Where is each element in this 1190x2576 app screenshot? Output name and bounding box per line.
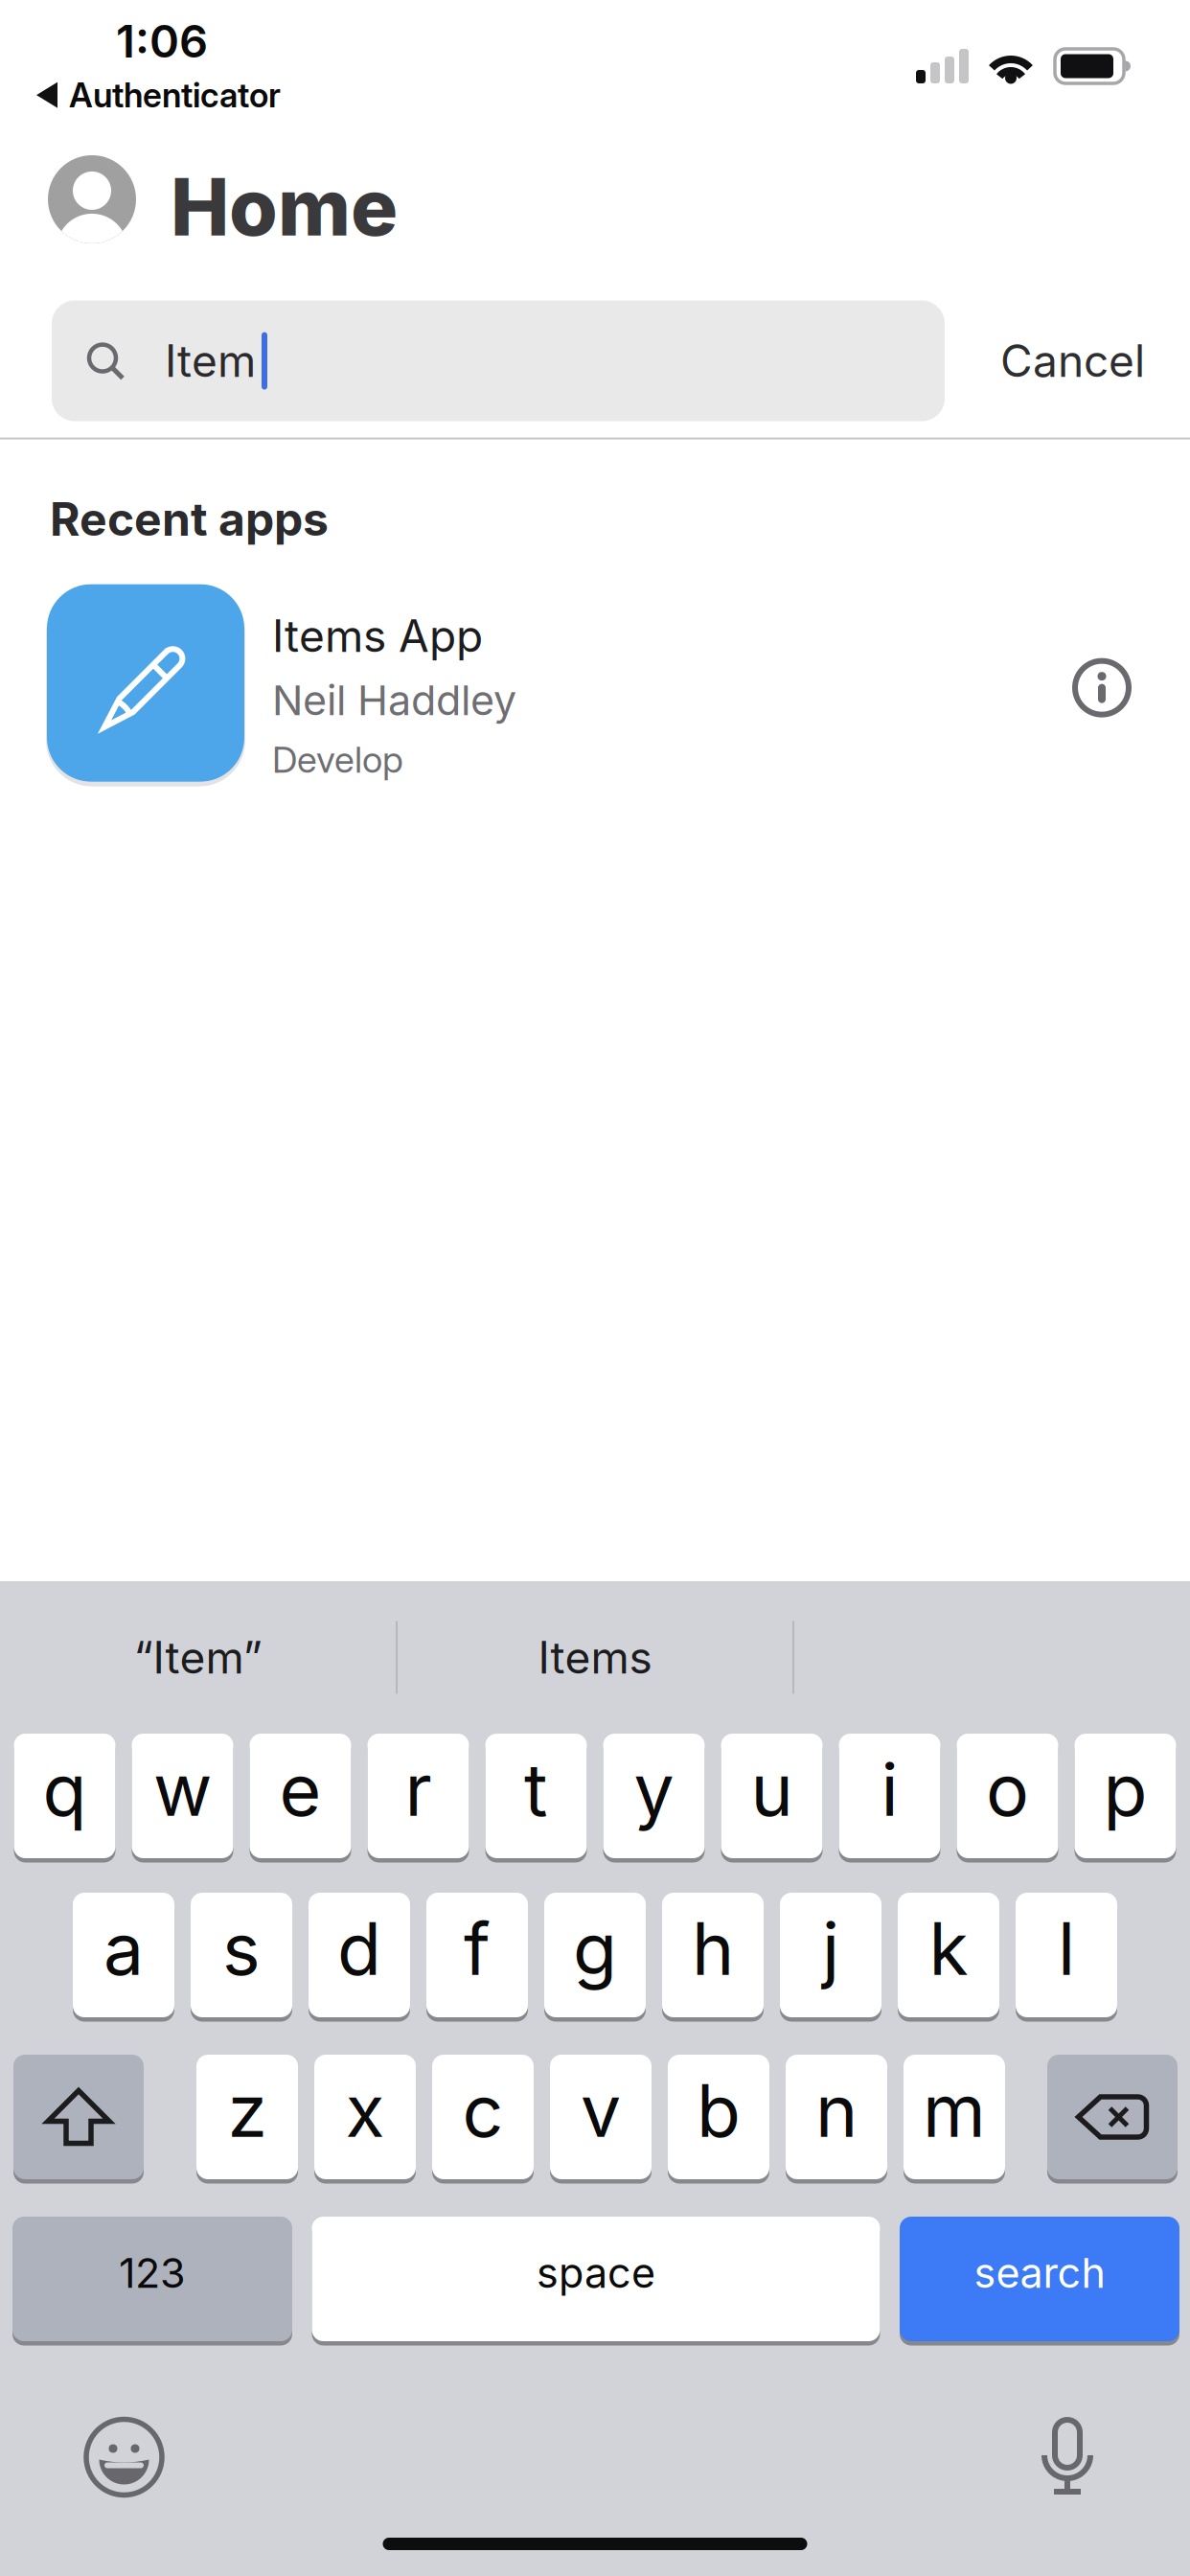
button[interactable]: u <box>721 1734 823 1861</box>
button[interactable]: m <box>904 2055 1005 2182</box>
button[interactable]: b <box>668 2055 769 2182</box>
button[interactable]: e <box>250 1734 351 1861</box>
staticText: g <box>573 1905 617 1992</box>
staticText: p <box>1103 1746 1147 1833</box>
button[interactable]: j <box>780 1893 881 2020</box>
staticText: b <box>697 2067 741 2154</box>
button[interactable]: p <box>1075 1734 1176 1861</box>
button[interactable]: f <box>426 1893 528 2020</box>
staticText: search <box>974 2248 1105 2298</box>
staticText: h <box>692 1905 734 1992</box>
staticText: t <box>524 1746 548 1833</box>
button[interactable]: “Item” <box>0 1581 396 1734</box>
staticText: Cancel <box>1000 334 1145 388</box>
button[interactable]: Cancel <box>1000 334 1145 388</box>
staticText: 123 <box>119 2248 186 2298</box>
staticText: k <box>929 1905 968 1992</box>
staticText: o <box>986 1746 1029 1833</box>
button[interactable] <box>1047 2055 1178 2182</box>
staticText: Neil Haddley <box>272 675 516 725</box>
staticText: Authenticator <box>69 75 281 115</box>
button[interactable]: x <box>314 2055 416 2182</box>
staticText: d <box>337 1905 381 1992</box>
staticText: v <box>581 2067 621 2154</box>
staticText: f <box>464 1905 491 1992</box>
staticText: m <box>923 2067 986 2154</box>
button[interactable]: y <box>603 1734 705 1861</box>
button[interactable]: d <box>309 1893 410 2020</box>
staticText: u <box>751 1746 793 1833</box>
staticText: l <box>1058 1905 1075 1992</box>
button[interactable]: Items App <box>0 583 1190 783</box>
staticText: a <box>103 1905 144 1992</box>
staticText: j <box>822 1905 839 1992</box>
staticText: i <box>881 1746 898 1833</box>
button[interactable]: g <box>544 1893 646 2020</box>
button[interactable]: Item <box>52 301 945 421</box>
staticText: w <box>153 1746 212 1833</box>
staticText: y <box>634 1746 674 1833</box>
button[interactable]: l <box>1016 1893 1117 2020</box>
staticText: Items App <box>272 609 483 663</box>
staticText: 1:06 <box>116 14 208 69</box>
button[interactable]: h <box>662 1893 764 2020</box>
button[interactable]: c <box>432 2055 534 2182</box>
staticText: space <box>537 2248 655 2298</box>
button[interactable]: s <box>191 1893 292 2020</box>
staticText: n <box>815 2067 858 2154</box>
button[interactable]: z <box>196 2055 298 2182</box>
button[interactable]: r <box>367 1734 469 1861</box>
button[interactable] <box>48 155 136 243</box>
button[interactable] <box>13 2055 144 2182</box>
button[interactable] <box>1041 2417 1093 2497</box>
button[interactable]: t <box>485 1734 587 1861</box>
button[interactable]: q <box>14 1734 115 1861</box>
button[interactable]: a <box>73 1893 174 2020</box>
button[interactable]: w <box>132 1734 233 1861</box>
button[interactable]: n <box>786 2055 887 2182</box>
staticText: Item <box>165 334 256 388</box>
button[interactable]: i <box>839 1734 940 1861</box>
button[interactable]: Authenticator <box>0 75 281 115</box>
staticText: q <box>43 1746 87 1833</box>
staticText: Recent apps <box>50 491 329 547</box>
button[interactable] <box>1075 661 1129 715</box>
button[interactable]: k <box>898 1893 999 2020</box>
staticText: Home <box>171 159 398 254</box>
button[interactable]: 123 <box>12 2217 292 2344</box>
staticText: c <box>462 2067 503 2154</box>
staticText: “Item” <box>134 1631 262 1684</box>
staticText: s <box>222 1905 261 1992</box>
staticText: r <box>405 1746 432 1833</box>
button[interactable]: search <box>900 2217 1179 2344</box>
staticText: z <box>228 2067 267 2154</box>
button[interactable]: space <box>312 2217 880 2344</box>
staticText: x <box>345 2067 385 2154</box>
staticText: Develop <box>272 737 403 782</box>
button[interactable]: v <box>550 2055 652 2182</box>
button[interactable]: o <box>957 1734 1058 1861</box>
button[interactable] <box>86 2419 162 2495</box>
staticText: e <box>279 1746 321 1833</box>
button[interactable]: Items <box>398 1581 792 1734</box>
staticText: Items <box>538 1631 652 1684</box>
